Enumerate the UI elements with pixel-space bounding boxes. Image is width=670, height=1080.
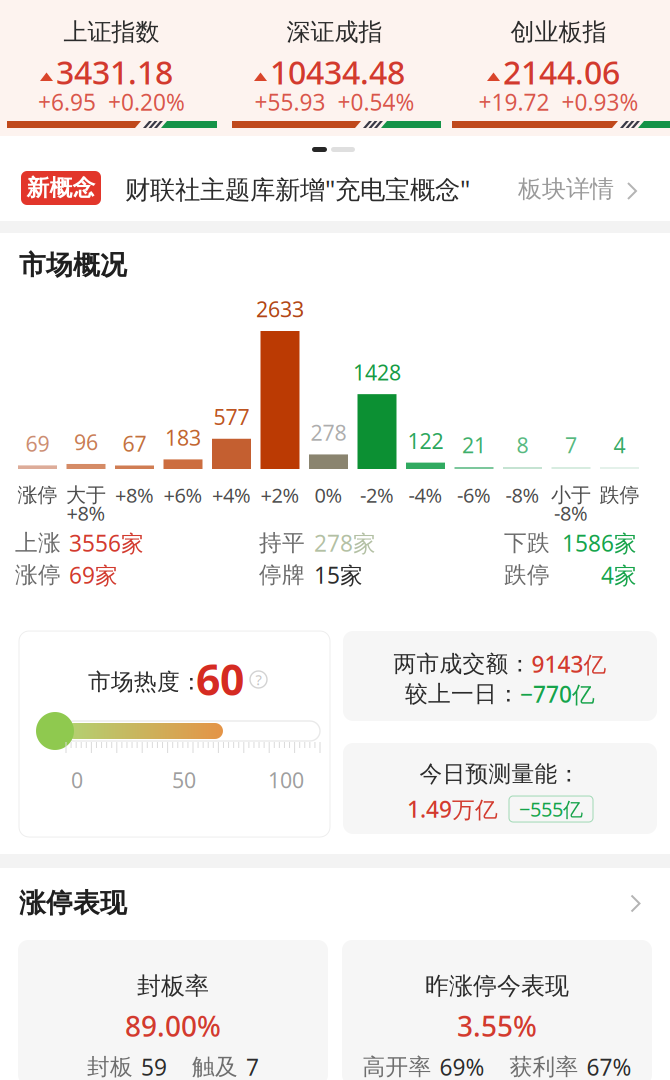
staticText: 深证成指 xyxy=(286,17,382,47)
staticText: 8 xyxy=(516,431,528,459)
staticText: 67 xyxy=(122,429,146,458)
staticText: 市场热度： xyxy=(88,668,203,696)
staticText: 大于 xyxy=(66,483,106,507)
staticText: 触及 xyxy=(192,1053,238,1080)
staticText: 7 xyxy=(246,1052,259,1080)
staticText: 69家 xyxy=(69,560,118,590)
staticText: +6.95 xyxy=(38,87,96,117)
staticText: -6% xyxy=(457,482,491,508)
staticText: 96 xyxy=(74,428,98,456)
staticText: 财联社主题库新增"充电宝概念" xyxy=(125,172,470,206)
staticText: 3556家 xyxy=(69,528,144,558)
staticText: 3.55% xyxy=(457,1007,537,1045)
staticText: 59 xyxy=(141,1052,167,1080)
staticText: 小于 xyxy=(551,483,591,507)
staticText: 15家 xyxy=(314,560,363,590)
staticText: -4% xyxy=(408,482,442,508)
button[interactable]: 昨涨停今表现 xyxy=(0,0,670,1080)
staticText: 板块详情 xyxy=(518,174,614,204)
staticText: 2633 xyxy=(256,295,304,323)
staticText: 278家 xyxy=(314,528,376,558)
staticText: 新概念 xyxy=(26,174,95,202)
staticText: 278 xyxy=(310,418,346,447)
staticText: 577 xyxy=(213,403,249,431)
staticText: 21 xyxy=(462,431,486,459)
staticText: 跌停 xyxy=(599,483,639,507)
staticText: −770亿 xyxy=(520,679,595,709)
staticText: 高开率 xyxy=(362,1053,431,1080)
button[interactable]: 上证指数 xyxy=(0,0,670,1080)
staticText: +4% xyxy=(212,482,251,508)
staticText: 10434.48 xyxy=(270,51,405,93)
staticText: 上涨 xyxy=(15,529,61,557)
staticText: 昨涨停今表现 xyxy=(425,971,569,1001)
staticText: 下跌 xyxy=(504,529,550,557)
staticText: 67% xyxy=(586,1052,631,1080)
staticText: +2% xyxy=(260,482,299,508)
staticText: 市场概况 xyxy=(19,249,127,281)
staticText: 3431.18 xyxy=(56,51,173,93)
button[interactable]: 新概念 xyxy=(0,0,670,1080)
staticText: 69% xyxy=(439,1052,484,1080)
staticText: 持平 xyxy=(259,529,305,557)
staticText: 较上一日： xyxy=(405,680,520,708)
staticText: −555亿 xyxy=(519,796,583,822)
staticText: +55.93 xyxy=(254,87,325,117)
staticText: 今日预测量能： xyxy=(419,760,580,788)
staticText: +8% xyxy=(66,500,105,526)
button[interactable]: 封板率 xyxy=(0,0,670,1080)
staticText: 1586家 xyxy=(562,528,637,558)
staticText: 1428 xyxy=(353,358,401,386)
staticText: 1.49万亿 xyxy=(407,794,498,824)
button[interactable]: 创业板指 xyxy=(0,0,670,1080)
staticText: 涨停 xyxy=(17,483,57,507)
staticText: 50 xyxy=(172,766,196,794)
staticText: 100 xyxy=(268,766,304,794)
staticText: 两市成交额： xyxy=(393,650,531,678)
staticText: 上证指数 xyxy=(63,17,159,47)
button[interactable]: 涨停表现 xyxy=(0,0,670,1080)
staticText: 4家 xyxy=(601,560,637,590)
staticText: +0.93% xyxy=(561,87,638,117)
staticText: -8% xyxy=(505,482,539,508)
staticText: 9143亿 xyxy=(531,649,606,679)
staticText: 89.00% xyxy=(125,1007,221,1045)
staticText: 封板率 xyxy=(137,971,209,1001)
staticText: +0.54% xyxy=(337,87,414,117)
staticText: 获利率 xyxy=(509,1053,578,1080)
staticText: +19.72 xyxy=(478,87,549,117)
staticText: 涨停表现 xyxy=(19,887,127,919)
staticText: 122 xyxy=(407,426,443,455)
staticText: -2% xyxy=(360,482,394,508)
staticText: 封板 xyxy=(87,1053,133,1080)
staticText: 69 xyxy=(25,429,49,457)
staticText: +8% xyxy=(115,482,154,508)
staticText: 183 xyxy=(165,423,201,451)
staticText: ? xyxy=(255,670,261,689)
staticText: 0% xyxy=(314,482,342,508)
staticText: 停牌 xyxy=(259,561,305,589)
staticText: 创业板指 xyxy=(510,17,606,47)
staticText: 4 xyxy=(613,431,625,459)
staticText: 60 xyxy=(196,651,244,707)
staticText: 7 xyxy=(565,431,577,459)
staticText: +6% xyxy=(163,482,202,508)
staticText: 涨停 xyxy=(15,561,61,589)
staticText: -8% xyxy=(554,500,588,526)
staticText: 2144.06 xyxy=(503,51,620,93)
button[interactable]: 深证成指 xyxy=(0,0,670,1080)
staticText: 0 xyxy=(71,766,83,794)
staticText: +0.20% xyxy=(108,87,185,117)
staticText: 跌停 xyxy=(504,561,550,589)
